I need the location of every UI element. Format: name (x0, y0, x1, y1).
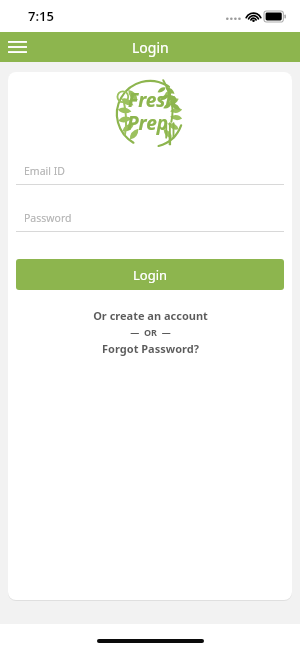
button[interactable]: Password (16, 211, 284, 232)
button[interactable]: Forgot Password? (102, 341, 199, 356)
staticText: Fresh (128, 87, 177, 113)
button[interactable]: Login (16, 259, 284, 290)
staticText: Email ID (24, 164, 65, 178)
staticText: Prep (127, 110, 169, 136)
staticText: 7:15 (28, 7, 54, 25)
button[interactable]: Or create an account (93, 308, 208, 323)
staticText: — OR — (130, 326, 171, 338)
button[interactable]: Email ID (16, 164, 284, 185)
staticText: Login (133, 266, 168, 284)
staticText: Password (24, 211, 72, 225)
button[interactable]: Open navigation menu (0, 32, 34, 62)
staticText: Login (132, 38, 169, 57)
